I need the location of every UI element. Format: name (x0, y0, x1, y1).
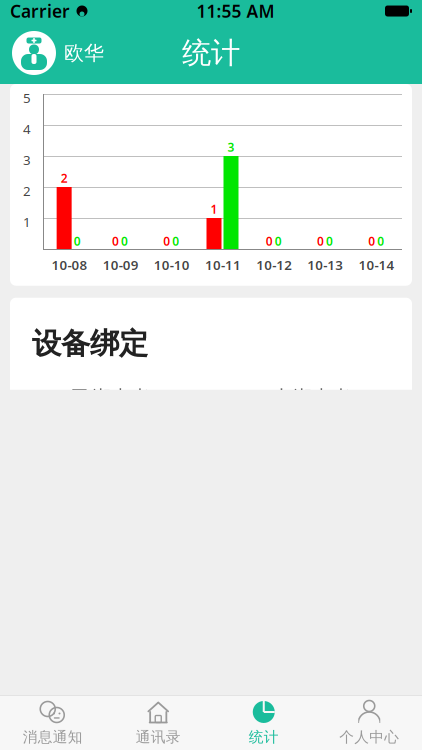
staticText: 10-09 (103, 256, 139, 274)
staticText: 10-11 (205, 256, 241, 274)
button[interactable]: 通讯录 (105, 694, 211, 750)
staticText: 0 (266, 233, 273, 249)
staticText: 0 (275, 233, 282, 249)
button[interactable]: 个人中心 (316, 694, 422, 750)
staticText: 10-14 (358, 256, 394, 274)
staticText: 设备绑定 (32, 326, 148, 362)
staticText: 10-12 (256, 256, 292, 274)
staticText: 欧华 (64, 41, 104, 65)
staticText: 3 (227, 139, 234, 155)
staticText: 统计 (182, 35, 240, 71)
staticText: 1 (23, 213, 31, 231)
staticText: 2 (61, 170, 68, 186)
staticText: 3 (23, 151, 31, 169)
staticText: 0 (317, 233, 324, 249)
staticText: 0 (163, 233, 170, 249)
staticText: 0 (172, 233, 179, 249)
staticText: 10-10 (154, 256, 190, 274)
staticText: 0 (377, 233, 384, 249)
staticText: 消息通知 (23, 728, 83, 746)
staticText: 0 (74, 233, 81, 249)
staticText: 10-08 (52, 256, 88, 274)
staticText: Carrier (10, 0, 70, 22)
staticText: 统计 (249, 728, 279, 746)
staticText: 0 (121, 233, 128, 249)
staticText: 0 (112, 233, 119, 249)
staticText: 0 (326, 233, 333, 249)
button[interactable]: 消息通知 (0, 694, 105, 750)
staticText: 4 (23, 120, 31, 138)
staticText: 10-13 (307, 256, 343, 274)
button[interactable]: 欧华 (0, 29, 104, 77)
staticText: 通讯录 (136, 728, 181, 746)
staticText: 11:55 AM (196, 0, 274, 22)
staticText: 个人中心 (339, 728, 399, 746)
staticText: 1 (210, 201, 217, 217)
staticText: 2 (23, 182, 31, 200)
staticText: 0 (368, 233, 375, 249)
button[interactable]: 统计 (211, 694, 316, 750)
staticText: 已绑患者 (70, 386, 150, 410)
staticText: 5 (23, 89, 31, 107)
staticText: 未绑患者 (271, 386, 351, 410)
